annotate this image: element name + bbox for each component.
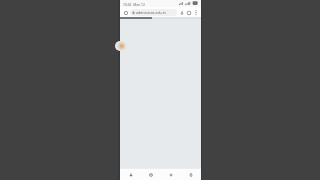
button[interactable]: Bookmarks <box>145 169 156 180</box>
button[interactable]: Share <box>185 169 196 180</box>
button[interactable]: Voice search <box>178 9 185 16</box>
button[interactable]: Switch tabs <box>185 9 192 16</box>
button[interactable]: Back <box>125 169 136 180</box>
button[interactable]: More options <box>192 9 199 16</box>
button[interactable]: New tab <box>165 169 176 180</box>
staticText: 10:42 Mon 12 <box>123 2 145 6</box>
button[interactable]: Home <box>122 9 129 16</box>
button[interactable]: admissions.edu.in <box>130 9 177 16</box>
staticText: admissions.edu.in <box>136 10 166 15</box>
